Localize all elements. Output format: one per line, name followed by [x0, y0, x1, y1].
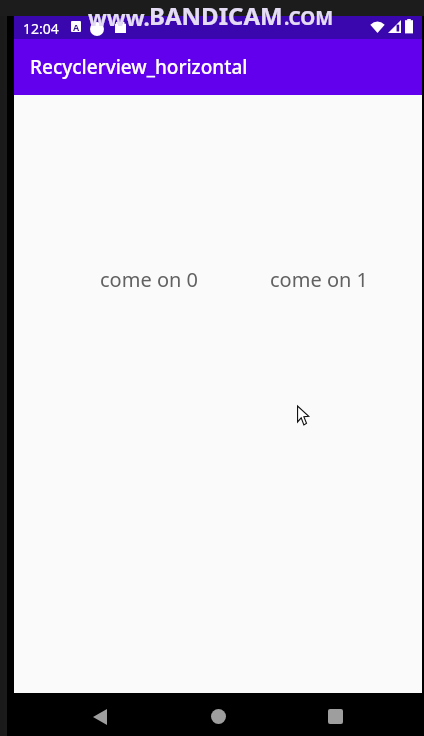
staticText: come on 1	[270, 266, 368, 293]
button[interactable]: Back	[76, 695, 124, 736]
staticText: come on 0	[100, 266, 198, 293]
button[interactable]: Recent apps	[311, 695, 359, 736]
staticText: BANDICAM	[149, 0, 283, 32]
button[interactable]: come on 0	[64, 95, 234, 693]
staticText: A	[73, 21, 80, 32]
button[interactable]: Home	[194, 695, 242, 736]
staticText: 12:04	[23, 19, 59, 38]
staticText: www.	[88, 2, 150, 32]
staticText: .COM	[284, 5, 334, 31]
button[interactable]: come on 1	[234, 95, 404, 693]
staticText: Recyclerview_horizontal	[30, 54, 248, 80]
